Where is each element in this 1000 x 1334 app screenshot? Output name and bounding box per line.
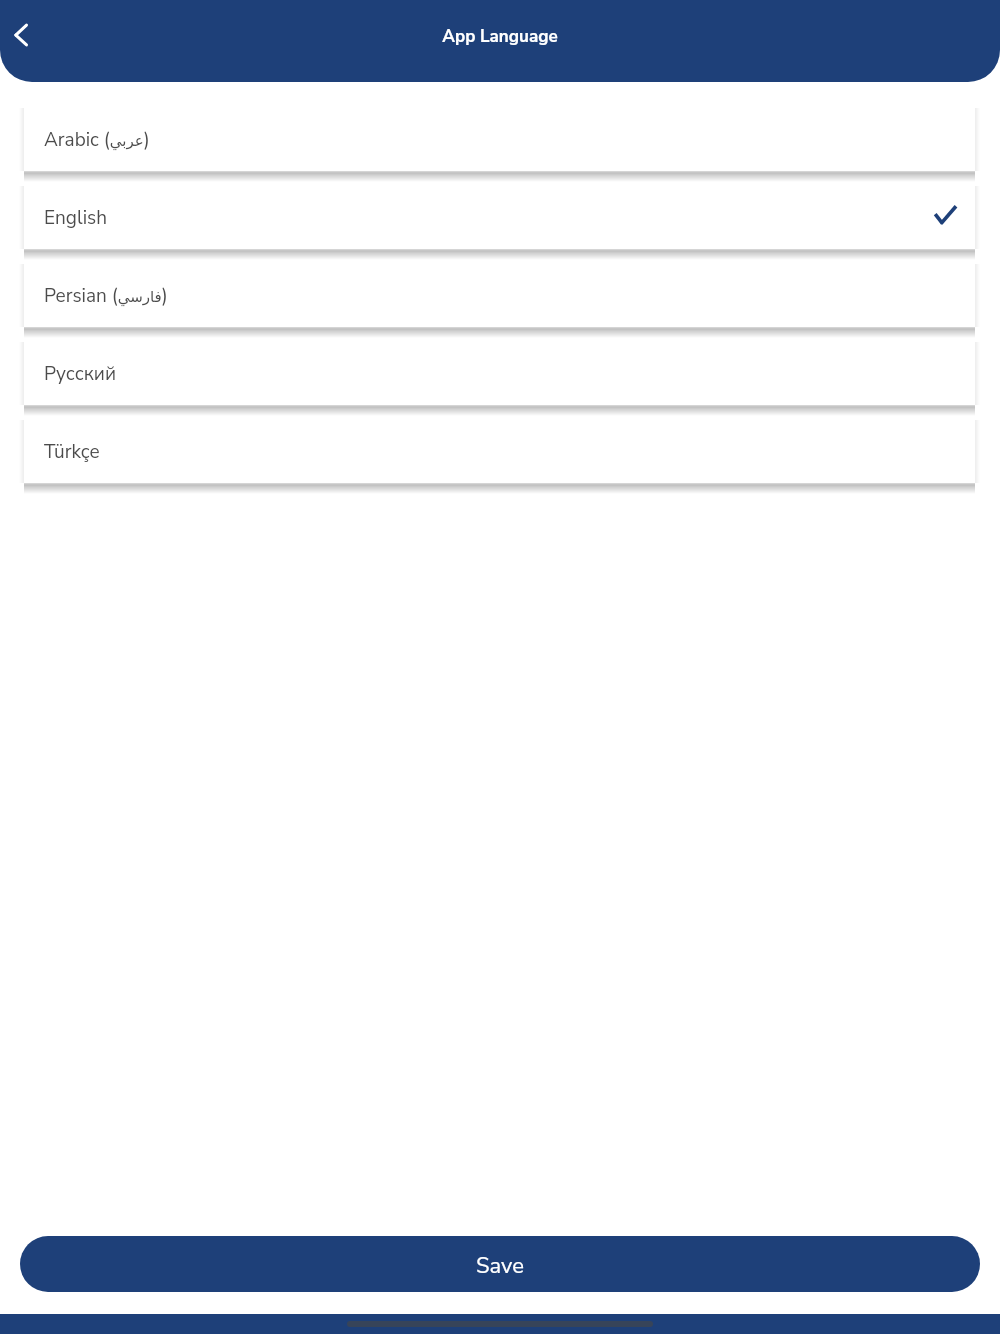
staticText: Persian (فارسي) xyxy=(44,283,168,309)
button[interactable]: Русский xyxy=(24,342,975,405)
button[interactable]: Arabic (عربي) xyxy=(24,108,975,171)
staticText: Arabic (عربي) xyxy=(44,127,150,153)
button[interactable]: Persian (فارسي) xyxy=(24,264,975,327)
staticText: Save xyxy=(476,1251,524,1281)
staticText: Русский xyxy=(44,361,117,387)
button[interactable]: Save xyxy=(20,1236,980,1292)
button[interactable]: English xyxy=(24,186,975,249)
button[interactable]: Türkçe xyxy=(24,420,975,483)
staticText: English xyxy=(44,205,107,231)
button[interactable]: Back xyxy=(0,11,44,55)
staticText: Türkçe xyxy=(44,439,100,465)
staticText: App Language xyxy=(442,25,558,48)
